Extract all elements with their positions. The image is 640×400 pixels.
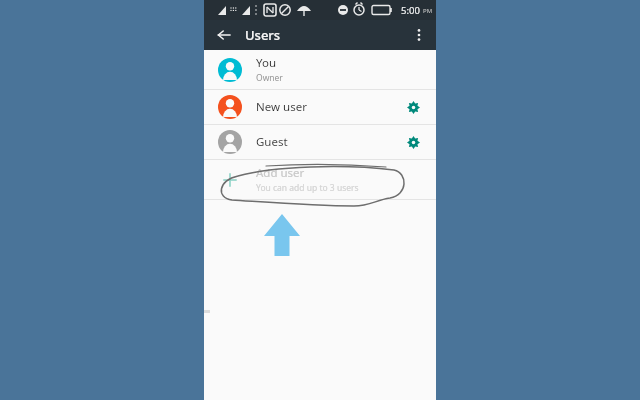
button[interactable]: More options — [407, 23, 431, 47]
button[interactable]: User settings — [402, 131, 424, 153]
button[interactable]: Back — [212, 23, 236, 47]
staticText: Users — [245, 26, 281, 44]
button[interactable]: Guest — [204, 125, 436, 159]
button[interactable]: New user — [204, 90, 436, 124]
button[interactable]: You — [204, 50, 436, 89]
staticText: Owner — [256, 72, 283, 84]
staticText: Guest — [256, 134, 288, 150]
staticText: You — [256, 55, 276, 71]
staticText: 5:00 — [401, 4, 420, 17]
button[interactable]: Add user — [204, 160, 436, 199]
button[interactable]: User settings — [402, 96, 424, 118]
staticText: You can add up to 3 users — [256, 182, 359, 194]
staticText: PM — [423, 7, 433, 15]
staticText: New user — [256, 99, 307, 115]
staticText: Add user — [256, 165, 305, 181]
